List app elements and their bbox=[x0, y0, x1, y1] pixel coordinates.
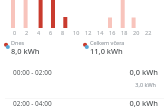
staticText: Celkem včera bbox=[90, 39, 125, 46]
staticText: 18 bbox=[121, 29, 128, 36]
staticText: 22 bbox=[145, 29, 152, 36]
staticText: 8 bbox=[61, 29, 65, 36]
button[interactable]: 02:00 - 04:00 bbox=[0, 96, 164, 110]
staticText: 14 bbox=[97, 29, 104, 36]
staticText: 8,0 kWh bbox=[11, 46, 40, 56]
staticText: Dnes bbox=[11, 39, 25, 46]
staticText: 4 bbox=[37, 29, 41, 36]
staticText: 6 bbox=[49, 29, 53, 36]
staticText: 00:00 - 02:00 bbox=[13, 68, 52, 77]
staticText: 02:00 - 04:00 bbox=[13, 99, 52, 108]
staticText: 11,0 kWh bbox=[90, 46, 123, 56]
staticText: 12 bbox=[85, 29, 92, 36]
staticText: 2 bbox=[25, 29, 29, 36]
staticText: 0,0 kWh bbox=[0, 67, 158, 77]
button[interactable]: 00:00 - 02:00 bbox=[0, 65, 164, 96]
staticText: 20 bbox=[133, 29, 140, 36]
staticText: 0,0 kWh bbox=[0, 98, 158, 108]
staticText: 10 bbox=[73, 29, 80, 36]
staticText: 0 bbox=[13, 29, 17, 36]
staticText: 16 bbox=[109, 29, 116, 36]
staticText: 3,0 kWh bbox=[0, 81, 156, 88]
